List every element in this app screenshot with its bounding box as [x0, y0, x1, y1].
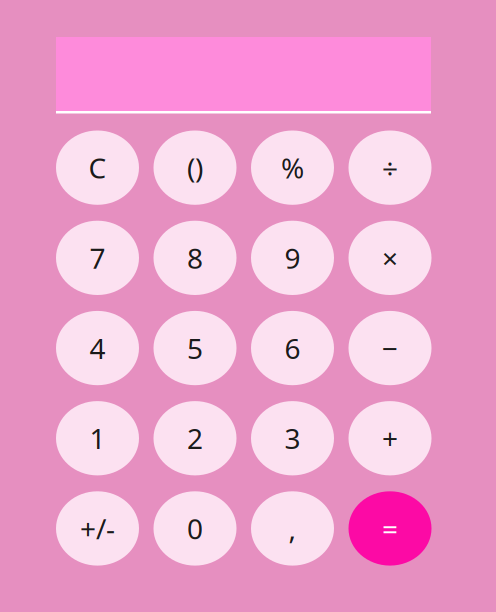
staticText: 8	[187, 239, 203, 276]
staticText: ×	[382, 239, 398, 276]
button[interactable]: Percent	[251, 130, 334, 205]
staticText: 3	[284, 420, 300, 457]
staticText: 9	[284, 239, 300, 276]
button[interactable]: Three	[251, 401, 334, 475]
button[interactable]: Nine	[251, 221, 334, 295]
staticText: ,	[288, 510, 296, 547]
button[interactable]: Subtract	[348, 311, 431, 385]
staticText: =	[382, 510, 398, 547]
staticText: 0	[187, 510, 203, 547]
button[interactable]: Eight	[153, 221, 236, 295]
button[interactable]: Four	[56, 311, 139, 385]
button[interactable]: Zero	[153, 491, 236, 566]
button[interactable]: Toggle sign	[56, 491, 139, 566]
staticText: %	[281, 149, 304, 186]
staticText: +	[382, 420, 398, 457]
staticText: 2	[187, 420, 203, 457]
button[interactable]: Equals	[348, 491, 431, 566]
button[interactable]: One	[56, 401, 139, 475]
button[interactable]: Decimal separator	[251, 491, 334, 566]
staticText: ÷	[382, 149, 398, 186]
button[interactable]: Five	[153, 311, 236, 385]
button[interactable]: Add	[348, 401, 431, 475]
staticText: +/-	[80, 510, 115, 547]
button[interactable]: Parentheses	[153, 130, 236, 205]
button[interactable]: Divide	[348, 130, 431, 205]
staticText: C	[88, 149, 106, 186]
button[interactable]: Seven	[56, 221, 139, 295]
staticText: 1	[89, 420, 105, 457]
button[interactable]: Clear	[56, 130, 139, 205]
staticText: 4	[89, 329, 105, 367]
button[interactable]: Multiply	[348, 221, 431, 295]
staticText: 7	[89, 239, 105, 276]
staticText: ()	[187, 149, 203, 186]
button[interactable]: Six	[251, 311, 334, 385]
staticText: 5	[187, 329, 203, 367]
staticText: −	[382, 329, 398, 367]
staticText: 6	[284, 329, 300, 367]
button[interactable]: Two	[153, 401, 236, 475]
